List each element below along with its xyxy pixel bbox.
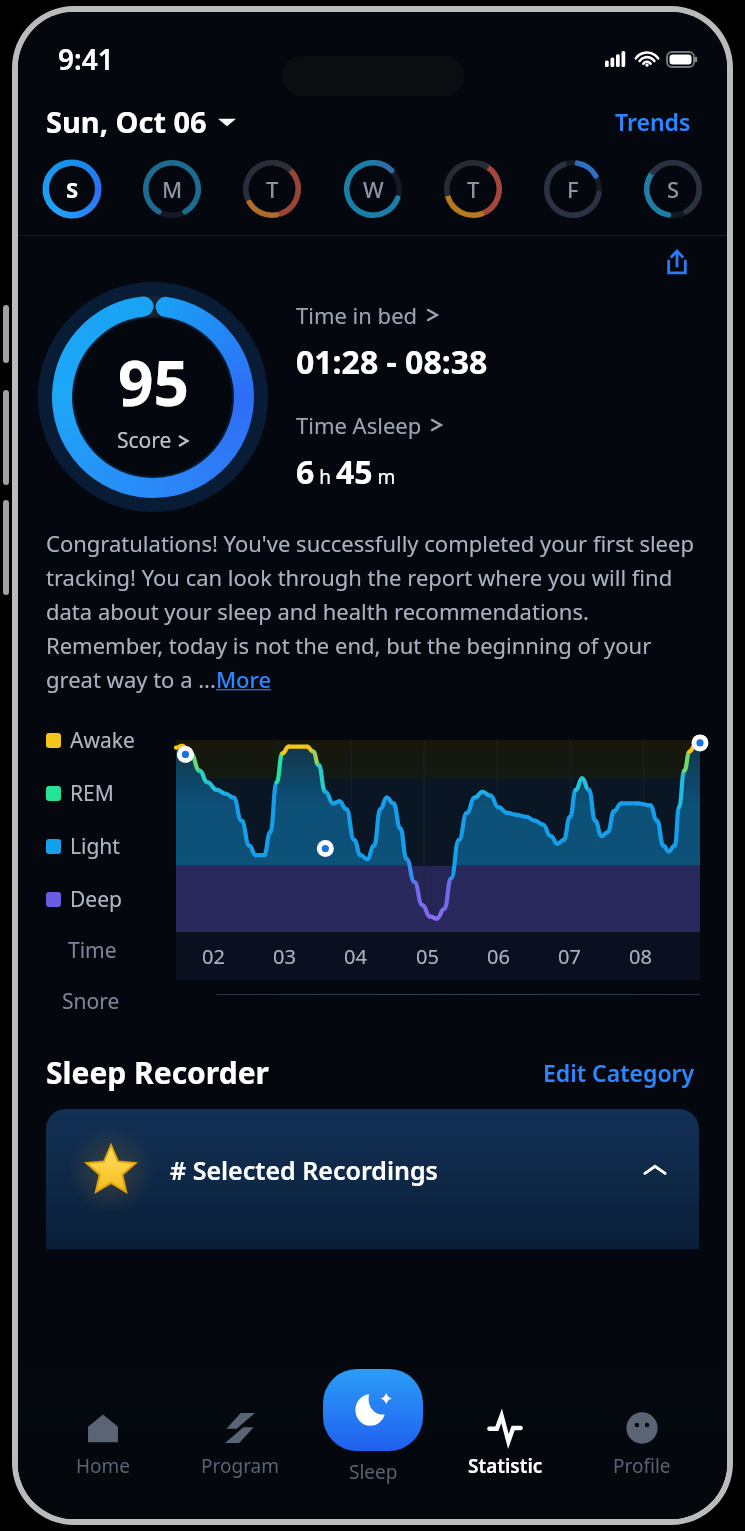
staticText: Light <box>70 832 120 861</box>
staticText: 95 <box>118 340 189 424</box>
staticText: Congratulations! You've successfully com… <box>46 528 699 694</box>
button[interactable]: Program <box>188 1407 292 1483</box>
staticText: 07 <box>558 943 581 970</box>
staticText: Awake <box>70 726 135 755</box>
button[interactable]: T <box>240 157 304 221</box>
staticText: Time Asleep <box>296 410 422 440</box>
staticText: S <box>66 174 79 204</box>
staticText: Time in bed <box>296 300 418 330</box>
staticText: 03 <box>273 943 296 970</box>
button[interactable]: S <box>40 157 104 221</box>
staticText: Time <box>68 936 117 965</box>
button[interactable]: Trends <box>609 100 697 143</box>
staticText: T <box>467 174 480 204</box>
button[interactable]: Time Asleep <box>296 410 444 440</box>
button[interactable]: M <box>140 157 204 221</box>
staticText: Program <box>201 1453 280 1479</box>
button[interactable]: T <box>441 157 505 221</box>
button[interactable]: Statistic <box>453 1407 557 1483</box>
button[interactable]: F <box>541 157 605 221</box>
button[interactable]: W <box>341 157 405 221</box>
staticText: REM <box>70 779 114 808</box>
staticText: Sleep Recorder <box>46 1052 269 1093</box>
staticText: 06 <box>487 943 510 970</box>
button[interactable]: 95 <box>44 288 262 506</box>
staticText: 05 <box>416 943 439 970</box>
staticText: Deep <box>70 885 122 914</box>
staticText: W <box>363 174 384 204</box>
staticText: 6 h 45 m <box>296 450 396 494</box>
staticText: 08 <box>629 943 652 970</box>
staticText: 9:41 <box>58 40 114 78</box>
button[interactable]: Edit Category <box>539 1053 699 1092</box>
button[interactable]: Profile <box>590 1407 694 1483</box>
staticText: Score <box>117 426 172 455</box>
staticText: M <box>162 174 183 204</box>
staticText: 01:28 - 08:38 <box>296 340 488 384</box>
staticText: Trends <box>615 106 691 137</box>
button[interactable]: Time in bed <box>296 300 440 330</box>
staticText: 04 <box>344 943 367 970</box>
staticText: Sun, Oct 06 <box>46 102 207 141</box>
staticText: Home <box>76 1453 131 1479</box>
button[interactable]: Congratulations! You've successfully com… <box>46 528 699 694</box>
staticText: T <box>266 174 279 204</box>
staticText: F <box>567 174 579 204</box>
staticText: Profile <box>613 1453 671 1479</box>
staticText: Sleep <box>349 1459 398 1485</box>
staticText: # Selected Recordings <box>170 1153 438 1187</box>
button[interactable]: Sleep <box>323 1369 423 1451</box>
staticText: Snore <box>62 987 120 1012</box>
staticText: Edit Category <box>543 1057 695 1088</box>
staticText: S <box>667 174 680 204</box>
button[interactable]: Sun, Oct 06 <box>46 98 236 145</box>
button[interactable]: S <box>641 157 705 221</box>
button[interactable]: Home <box>51 1407 155 1483</box>
button[interactable]: # Selected Recordings <box>46 1109 699 1249</box>
staticText: 02 <box>202 943 225 970</box>
button[interactable]: Collapse <box>637 1152 673 1188</box>
staticText: Statistic <box>468 1453 543 1479</box>
button[interactable]: Share <box>657 242 697 282</box>
